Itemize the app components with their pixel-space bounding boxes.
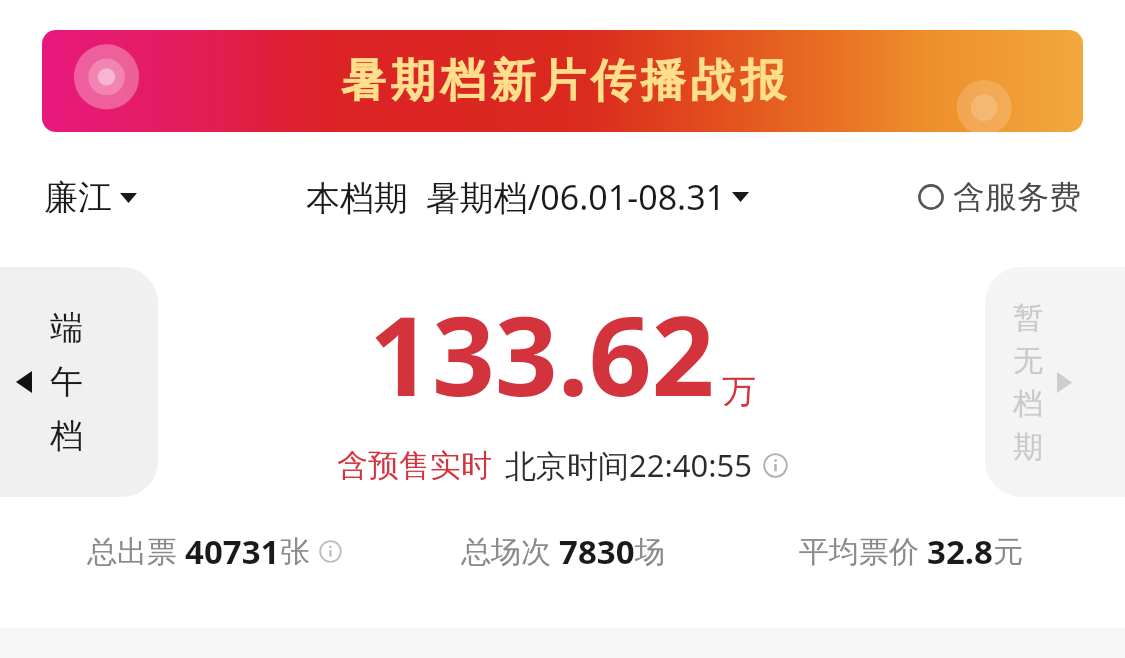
staticText: 无 <box>1013 342 1043 380</box>
staticText: 档 <box>50 415 83 457</box>
button[interactable]: 平均票价 <box>737 529 1085 574</box>
staticText: 含服务费 <box>953 177 1081 217</box>
staticText: 本档期 暑期档/06.01-08.31 <box>306 174 726 220</box>
staticText: 张 <box>280 533 310 571</box>
staticText: 场 <box>635 533 665 571</box>
staticText: 含预售实时 <box>337 446 492 485</box>
staticText: 40731 <box>185 529 280 574</box>
staticText: 平均票价 <box>799 533 919 571</box>
button[interactable]: 总场次 <box>389 529 737 574</box>
button[interactable]: 总出票 <box>40 529 389 574</box>
staticText: 总场次 <box>461 533 551 571</box>
staticText: 午 <box>50 361 83 403</box>
button[interactable]: 本档期 暑期档/06.01-08.31 <box>306 174 749 220</box>
button[interactable]: 实时数据说明 <box>763 453 788 478</box>
staticText: 档 <box>1013 385 1043 423</box>
staticText: 暑期档新片传播战报 <box>338 53 788 110</box>
staticText: 32.8 <box>927 529 993 574</box>
staticText: 暂 <box>1013 299 1043 337</box>
button[interactable]: 暑期档新片传播战报 <box>42 30 1083 132</box>
staticText: 133.62 <box>369 278 715 428</box>
staticText: 万 <box>722 370 756 413</box>
button[interactable]: 廉江 <box>44 176 137 219</box>
staticText: 期 <box>1013 428 1043 466</box>
staticText: 元 <box>993 533 1023 571</box>
staticText: 北京时间22:40:55 <box>505 444 753 486</box>
staticText: 总出票 <box>87 533 177 571</box>
staticText: 7830 <box>559 529 635 574</box>
button[interactable]: 暂 <box>985 267 1125 497</box>
staticText: 廉江 <box>44 176 112 219</box>
button[interactable]: 端 <box>0 267 158 497</box>
button[interactable]: 含服务费 <box>918 177 1081 217</box>
staticText: 端 <box>50 307 83 349</box>
